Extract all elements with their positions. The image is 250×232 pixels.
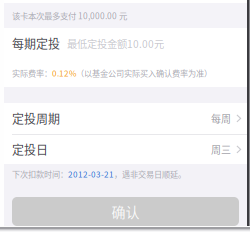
staticText: 定投日 [12, 141, 48, 158]
button[interactable]: 确认 [12, 197, 239, 226]
staticText: 定投周期 [12, 110, 60, 127]
staticText: 实际费率： [12, 67, 52, 79]
staticText: 该卡本次最多支付 10,000.00 元 [12, 9, 127, 22]
staticText: 最低定投金额10.00元 [67, 36, 164, 51]
staticText: 下次扣款时间： [12, 168, 68, 180]
button[interactable]: 定投日 [4, 135, 247, 164]
staticText: 周三 [211, 142, 231, 157]
button[interactable]: 定投周期 [4, 103, 247, 134]
staticText: 确认 [111, 201, 139, 222]
staticText: 每期定投 [12, 35, 60, 52]
staticText: 每周 [211, 111, 231, 126]
staticText: 2012-03-21 [68, 168, 114, 180]
staticText: 0.12% [52, 67, 76, 79]
staticText: （以基金公司实际买入确认费率为准） [76, 67, 212, 79]
staticText: ，遇非交易日顺延。 [114, 168, 186, 180]
